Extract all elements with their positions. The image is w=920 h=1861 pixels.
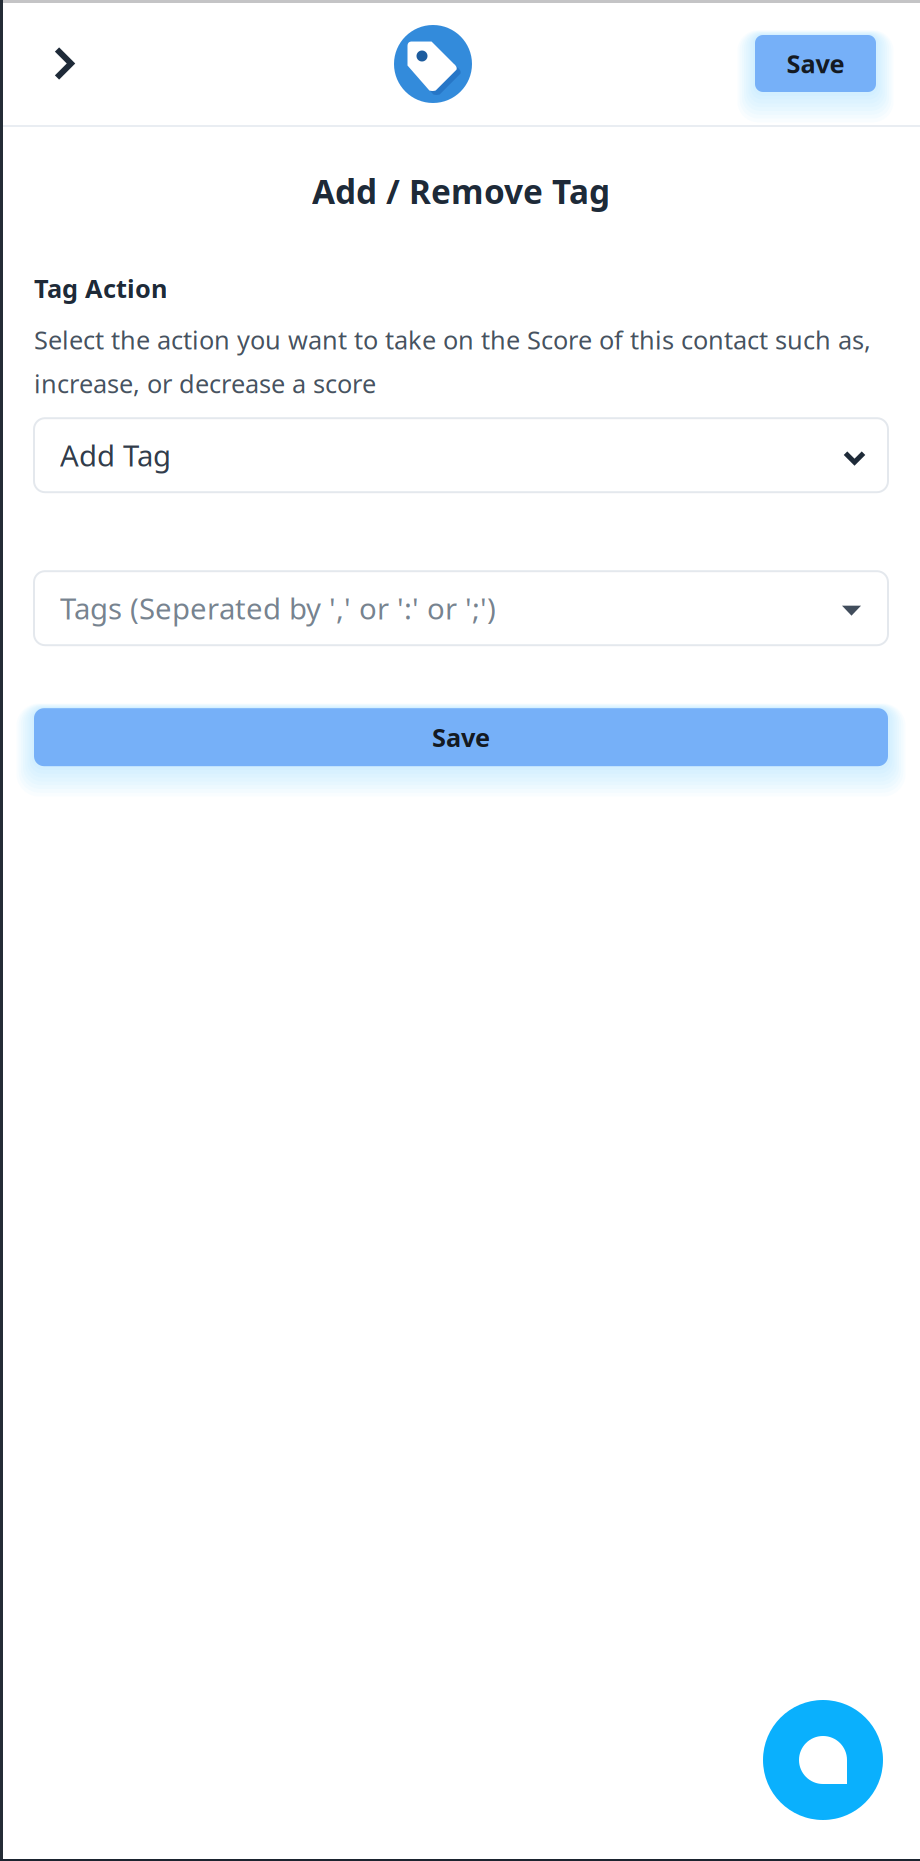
staticText: Save [432,720,490,754]
staticText: Tags (Seperated by ',' or ':' or ';') [60,589,496,628]
button[interactable]: Save [34,708,888,766]
button[interactable]: Add Tag [34,418,888,492]
button[interactable]: Open chat [763,1700,883,1820]
button[interactable]: Back [0,37,92,89]
button[interactable]: Save [755,35,876,92]
staticText: Add / Remove Tag [312,169,610,213]
staticText: Add Tag [60,436,171,475]
staticText: Save [786,47,844,80]
staticText: Select the action you want to take on th… [34,323,871,400]
button[interactable]: Tags (Seperated by ',' or ':' or ';') [34,571,888,645]
staticText: Tag Action [34,271,167,305]
